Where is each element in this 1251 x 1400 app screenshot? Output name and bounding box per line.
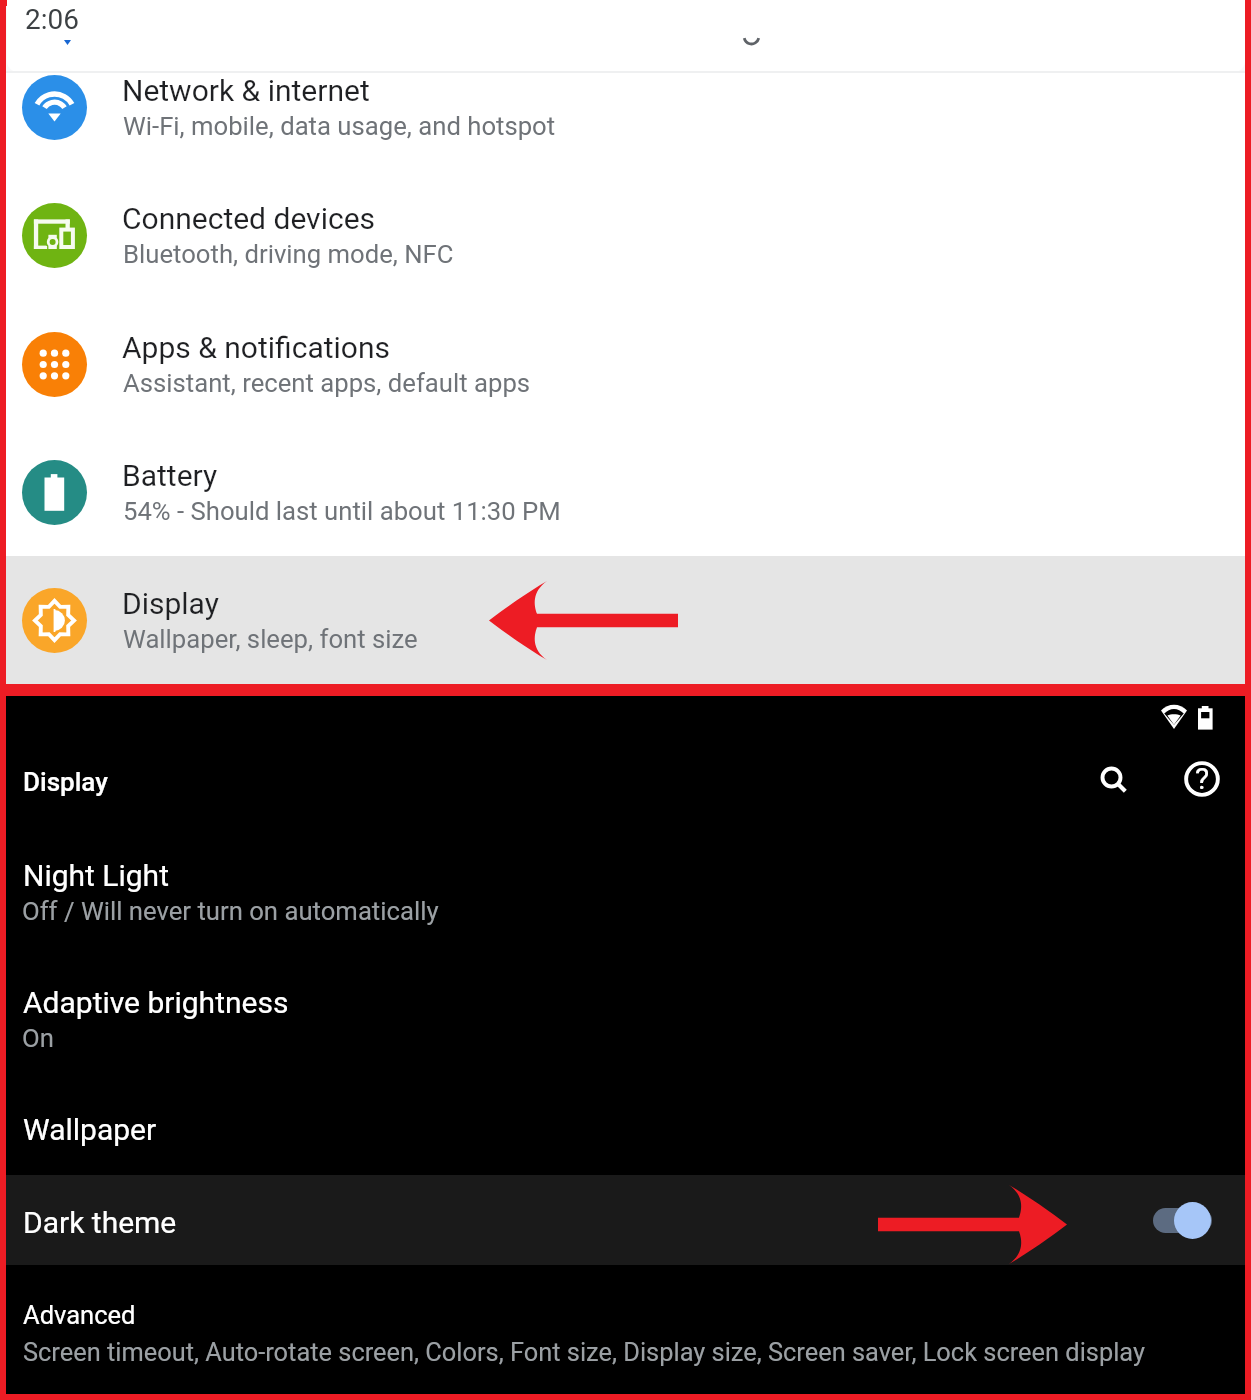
staticText: 54% - Should last until about 11:30 PM [123, 496, 561, 526]
staticText: Screen timeout, Auto-rotate screen, Colo… [23, 1337, 1145, 1367]
staticText: On [22, 1023, 54, 1053]
button[interactable]: Adaptive brightness [6, 985, 1245, 1079]
staticText: Battery [122, 458, 218, 493]
staticText: Wi-Fi, mobile, data usage, and hotspot [123, 111, 556, 141]
button[interactable]: Apps & notifications [6, 264, 1245, 392]
staticText: Adaptive brightness [23, 985, 289, 1020]
button[interactable]: Dark theme [6, 1175, 1245, 1265]
button[interactable]: Night Light [6, 858, 1245, 952]
button[interactable]: Advanced [6, 1296, 1245, 1391]
staticText: Display [23, 767, 108, 797]
staticText: Bluetooth, driving mode, NFC [123, 239, 454, 269]
staticText: Assistant, recent apps, default apps [123, 368, 531, 398]
staticText: Advanced [23, 1300, 136, 1330]
button[interactable]: Wallpaper [6, 1112, 1245, 1168]
staticText: Night Light [23, 858, 169, 893]
staticText: Connected devices [122, 201, 376, 236]
staticText: Dark theme [23, 1205, 177, 1240]
staticText: 2:06 [25, 3, 79, 36]
button[interactable]: Help [1168, 745, 1236, 813]
button[interactable]: Connected devices [6, 135, 1245, 263]
staticText: ? [1195, 761, 1210, 796]
staticText: Wallpaper [23, 1112, 157, 1147]
staticText: Display [122, 586, 219, 621]
button[interactable]: Search [1080, 746, 1148, 814]
button[interactable]: Network & internet [6, 7, 1245, 135]
staticText: Network & internet [122, 73, 370, 108]
staticText: Apps & notifications [122, 330, 390, 365]
button[interactable]: Battery [6, 392, 1245, 520]
staticText: Wallpaper, sleep, font size [123, 624, 418, 654]
staticText: Off / Will never turn on automatically [22, 896, 439, 926]
button[interactable]: Display [6, 520, 1245, 648]
